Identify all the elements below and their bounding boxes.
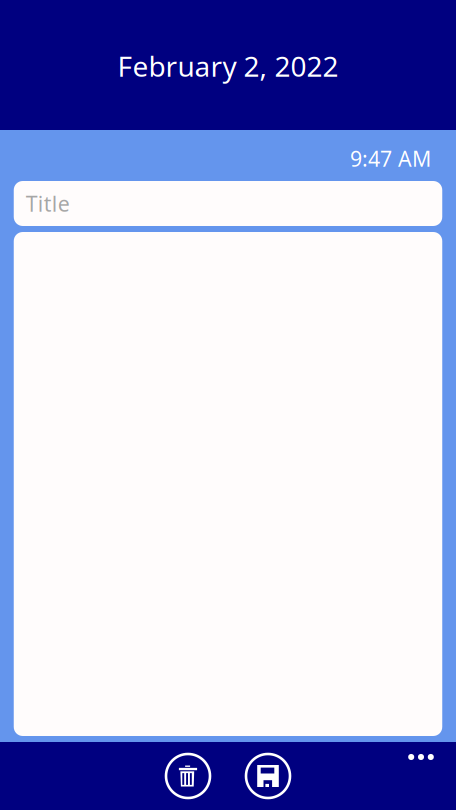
staticText: Title — [26, 189, 70, 218]
button[interactable]: Delete note — [166, 754, 210, 798]
staticText: 9:47 AM — [350, 144, 431, 173]
button[interactable]: More options — [399, 742, 443, 772]
staticText: February 2, 2022 — [117, 47, 338, 85]
button[interactable]: Title — [14, 181, 442, 226]
button[interactable]: Save note — [246, 754, 290, 798]
